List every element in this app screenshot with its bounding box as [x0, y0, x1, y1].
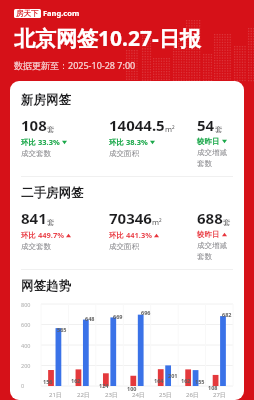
staticText: 124	[99, 382, 109, 389]
staticText: 0	[21, 382, 25, 389]
staticText: 70346	[109, 208, 152, 228]
button[interactable]: 108	[21, 115, 109, 158]
staticText: 669	[113, 313, 123, 320]
staticText: 155	[195, 378, 205, 385]
staticText: 164	[154, 377, 164, 384]
staticText: 682	[222, 311, 232, 318]
staticText: 成交增减套数	[197, 148, 233, 168]
button[interactable]: 14044.5	[109, 115, 197, 158]
staticText: 套	[223, 218, 231, 227]
staticText: 54	[197, 115, 215, 135]
button[interactable]: 841	[21, 208, 109, 251]
staticText: 201	[168, 372, 178, 379]
staticText: 162	[71, 377, 81, 384]
staticText: 房天下	[16, 9, 39, 18]
staticText: 数据更新至：2025-10-28 7:00	[14, 59, 136, 71]
staticText: 800	[21, 301, 31, 308]
staticText: 841	[21, 208, 47, 228]
button[interactable]: 688	[197, 208, 233, 261]
staticText: 环比 449.7%	[21, 230, 64, 240]
staticText: m²	[165, 124, 175, 134]
staticText: 较昨日	[197, 137, 220, 146]
staticText: 较昨日	[197, 230, 220, 239]
staticText: 二手房网签	[21, 185, 84, 201]
staticText: 25日	[159, 391, 172, 399]
staticText: 156	[43, 378, 53, 385]
staticText: 成交面积	[109, 242, 139, 251]
staticText: 400	[21, 342, 31, 349]
staticText: 688	[197, 208, 223, 228]
staticText: 27日	[213, 391, 226, 399]
staticText: 600	[21, 321, 31, 328]
staticText: 环比 33.3%	[21, 137, 60, 147]
staticText: 108	[208, 384, 218, 391]
staticText: 成交增减套数	[197, 241, 233, 261]
staticText: 24日	[132, 391, 145, 399]
staticText: 套	[47, 218, 55, 227]
staticText: 23日	[105, 391, 118, 399]
staticText: 新房网签	[21, 92, 71, 108]
staticText: 26日	[186, 391, 199, 399]
button[interactable]: 54	[197, 115, 233, 168]
staticText: 100	[127, 385, 137, 392]
staticText: 套	[215, 125, 223, 134]
staticText: 565	[57, 326, 67, 333]
staticText: 21日	[49, 391, 62, 399]
staticText: 成交面积	[109, 149, 139, 158]
staticText: 成交套数	[21, 149, 51, 158]
staticText: 北京网签10.27-日报	[14, 24, 201, 53]
staticText: 环比 441.3%	[109, 230, 152, 240]
button[interactable]: 70346	[109, 208, 197, 251]
staticText: Fang.com	[43, 8, 80, 18]
staticText: 环比 38.3%	[109, 137, 148, 147]
staticText: 套	[47, 125, 55, 134]
staticText: 200	[21, 362, 31, 369]
staticText: 成交套数	[21, 242, 51, 251]
staticText: 696	[141, 309, 151, 316]
staticText: 22日	[77, 391, 90, 399]
staticText: 108	[21, 115, 47, 135]
staticText: m²	[152, 217, 162, 227]
staticText: 648	[85, 315, 95, 322]
staticText: 162	[181, 377, 191, 384]
staticText: 网签趋势	[21, 278, 71, 294]
staticText: 14044.5	[109, 115, 165, 135]
